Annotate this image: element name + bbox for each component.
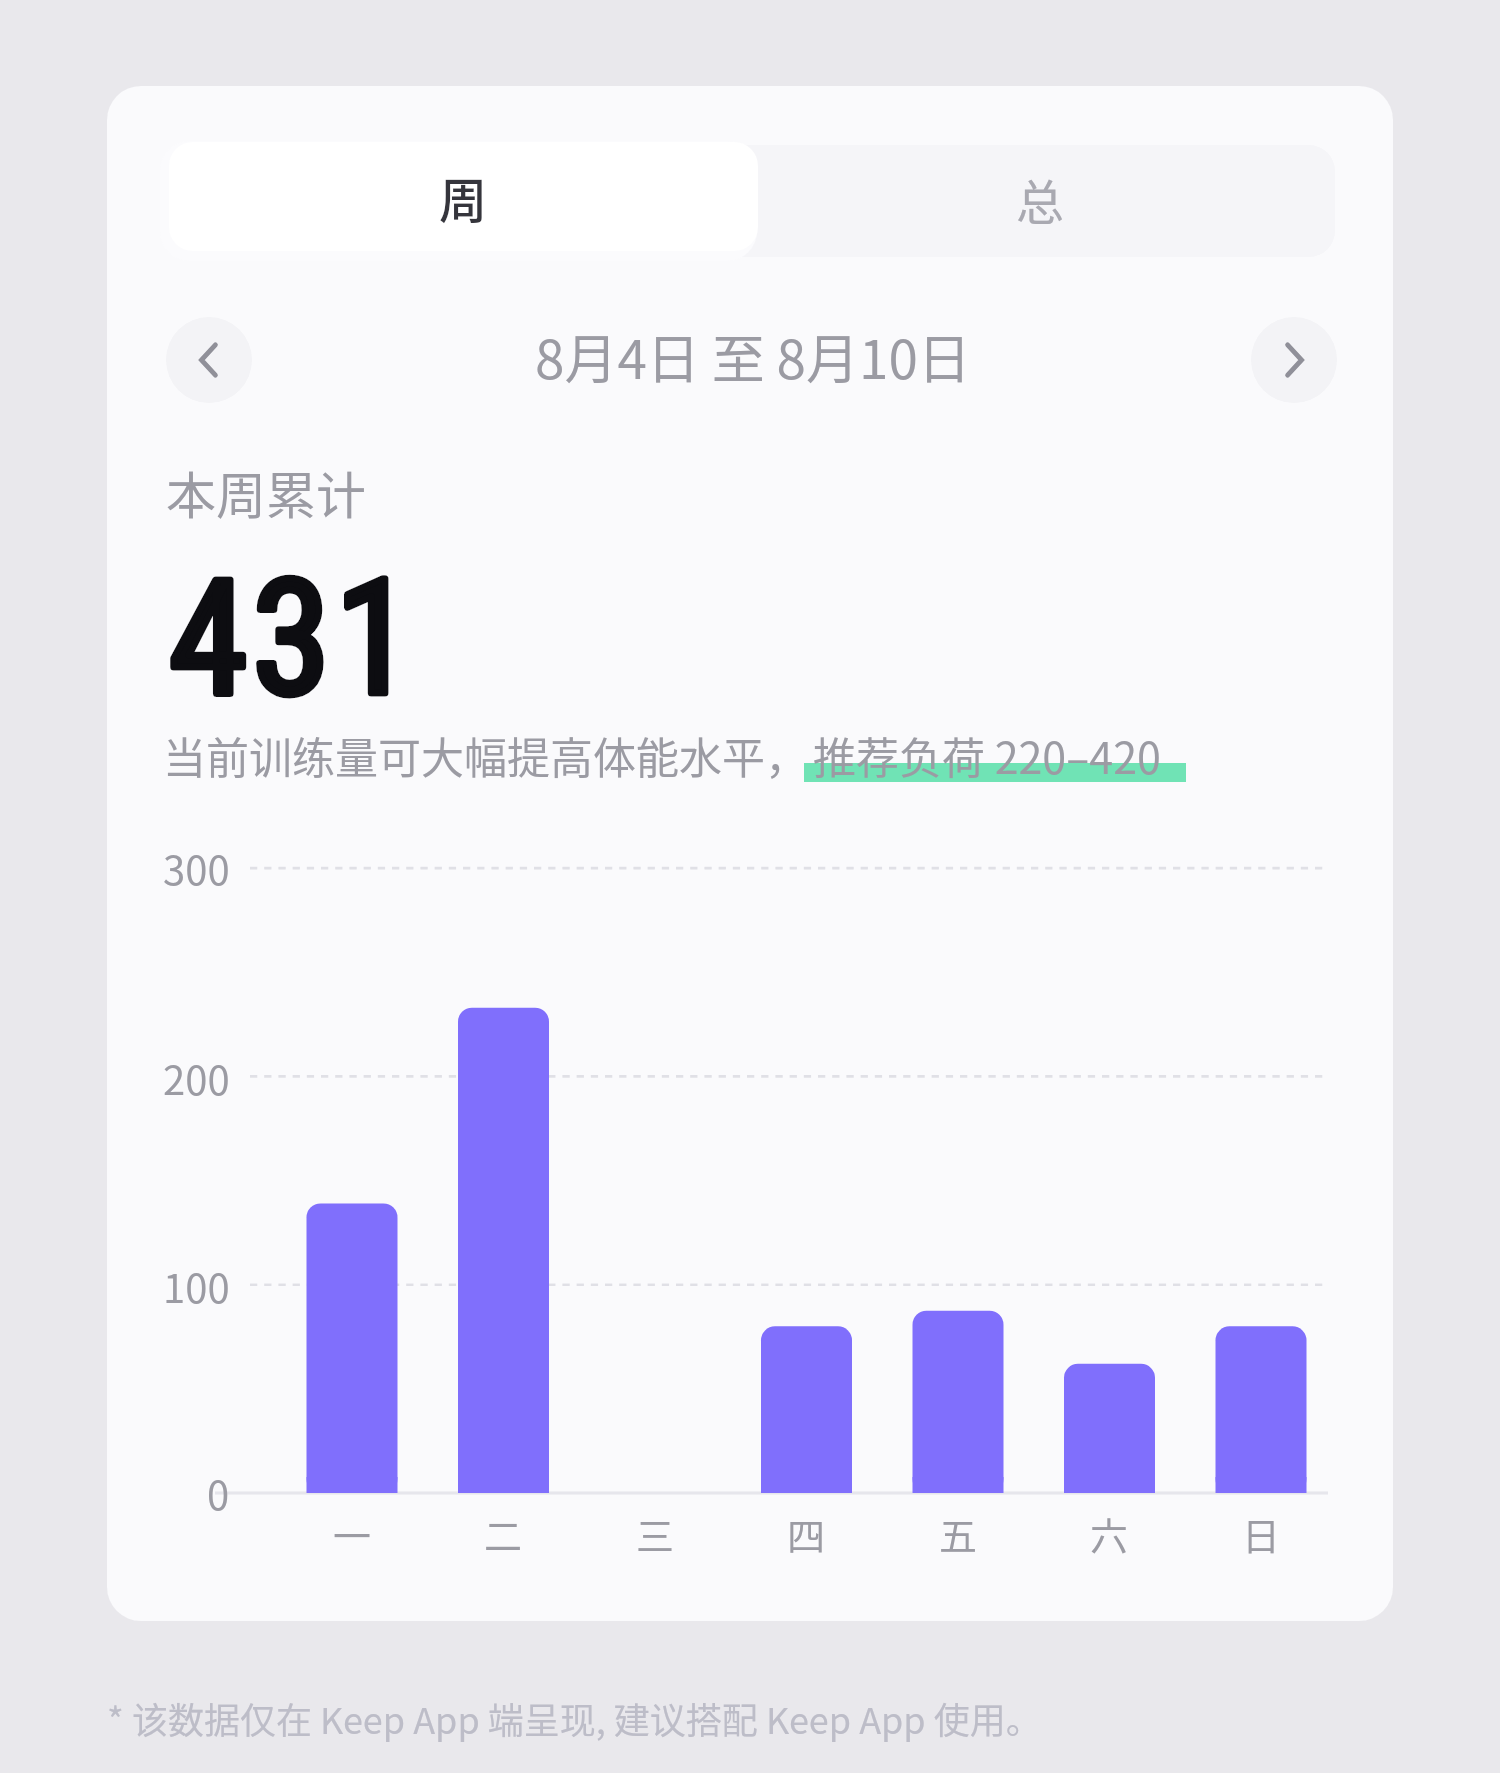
staticText: 8月4日 至 8月10日	[535, 318, 971, 395]
staticText: 431	[169, 545, 418, 731]
button[interactable]: Previous week	[166, 317, 252, 403]
staticText: 0	[207, 1464, 230, 1522]
button[interactable]: 总	[758, 147, 1323, 251]
staticText: * 该数据仅在 Keep App 端呈现, 建议搭配 Keep App 使用。	[107, 1692, 1042, 1744]
staticText: 当前训练量可大幅提高体能水平，	[163, 724, 808, 786]
button[interactable]: 周	[169, 142, 758, 251]
staticText: 二	[484, 1506, 523, 1561]
staticText: 三	[636, 1506, 675, 1561]
button[interactable]: Next week	[1251, 317, 1337, 403]
staticText: 周	[439, 162, 488, 232]
staticText: 431	[169, 545, 418, 731]
staticText: 日	[1242, 1506, 1281, 1561]
staticText: 200	[163, 1049, 230, 1107]
staticText: 四	[787, 1506, 826, 1561]
staticText: 300	[163, 839, 230, 897]
staticText: 推荐负荷 220–420	[813, 724, 1161, 786]
staticText: 总	[1016, 164, 1065, 234]
staticText: 六	[1090, 1506, 1129, 1561]
staticText: 100	[163, 1257, 230, 1315]
staticText: 五	[939, 1506, 978, 1561]
staticText: 一	[333, 1506, 372, 1561]
staticText: 本周累计	[166, 456, 366, 528]
